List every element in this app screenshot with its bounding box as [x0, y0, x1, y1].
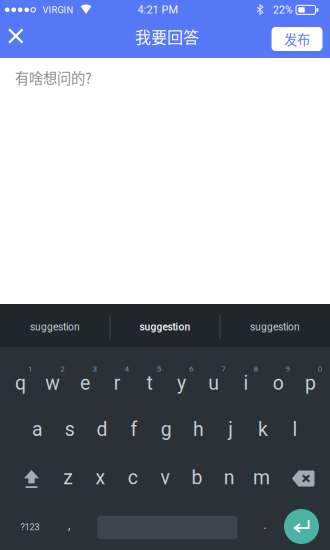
staticText: 2: [60, 364, 64, 373]
staticText: 3: [92, 364, 96, 373]
button[interactable]: i: [230, 362, 262, 404]
staticText: w: [45, 372, 60, 394]
staticText: 我要回答: [135, 25, 199, 48]
button[interactable]: Symbols: [8, 507, 52, 547]
button[interactable]: t: [133, 362, 165, 404]
staticText: b: [192, 466, 203, 489]
button[interactable]: q: [5, 362, 37, 404]
button[interactable]: suggestion: [222, 307, 328, 347]
staticText: s: [65, 418, 75, 441]
staticText: e: [80, 372, 90, 394]
button[interactable]: h: [182, 408, 214, 450]
button[interactable]: u: [198, 362, 230, 404]
staticText: 8: [253, 364, 257, 373]
button[interactable]: n: [213, 457, 245, 499]
button[interactable]: Close: [1, 21, 31, 51]
button[interactable]: w: [37, 362, 69, 404]
staticText: v: [160, 466, 169, 489]
button[interactable]: d: [86, 408, 118, 450]
button[interactable]: k: [247, 408, 279, 450]
staticText: r: [114, 372, 121, 394]
staticText: ?123: [20, 522, 39, 532]
button[interactable]: l: [279, 408, 311, 450]
button[interactable]: suggestion: [112, 307, 218, 347]
button[interactable]: p: [294, 362, 326, 404]
button[interactable]: g: [150, 408, 182, 450]
staticText: 4: [125, 364, 129, 373]
staticText: 7: [221, 364, 225, 373]
staticText: m: [253, 466, 270, 489]
button[interactable]: b: [181, 457, 213, 499]
staticText: o: [273, 372, 284, 394]
staticText: k: [258, 418, 268, 441]
staticText: VIRGIN: [42, 4, 73, 15]
button[interactable]: e: [69, 362, 101, 404]
staticText: 6: [189, 364, 193, 373]
staticText: h: [193, 418, 204, 441]
staticText: f: [131, 418, 138, 441]
button[interactable]: s: [54, 408, 86, 450]
staticText: suggestion: [139, 321, 190, 333]
button[interactable]: o: [262, 362, 294, 404]
button[interactable]: .: [251, 505, 279, 545]
button[interactable]: Return: [284, 509, 319, 544]
staticText: 9: [286, 364, 290, 373]
button[interactable]: f: [118, 408, 150, 450]
button[interactable]: x: [84, 457, 116, 499]
staticText: t: [146, 372, 152, 394]
staticText: a: [32, 418, 43, 441]
button[interactable]: r: [101, 362, 133, 404]
staticText: u: [208, 372, 219, 394]
staticText: d: [96, 418, 107, 441]
staticText: suggestion: [250, 321, 300, 333]
staticText: c: [128, 466, 138, 489]
button[interactable]: z: [52, 457, 84, 499]
staticText: l: [293, 418, 298, 441]
staticText: p: [305, 372, 316, 394]
button[interactable]: a: [21, 408, 53, 450]
button[interactable]: Shift: [16, 462, 48, 496]
button[interactable]: y: [166, 362, 198, 404]
staticText: n: [224, 466, 235, 489]
button[interactable]: suggestion: [2, 307, 108, 347]
button[interactable]: j: [215, 408, 247, 450]
staticText: 发布: [284, 29, 310, 49]
staticText: z: [63, 466, 73, 489]
staticText: y: [177, 372, 186, 394]
staticText: 0: [318, 364, 322, 373]
staticText: suggestion: [30, 321, 80, 333]
staticText: q: [15, 372, 26, 394]
staticText: ,: [68, 518, 70, 532]
button[interactable]: ,: [55, 505, 83, 545]
button[interactable]: 发布: [271, 27, 322, 51]
staticText: 22%: [273, 4, 293, 16]
staticText: j: [228, 418, 233, 441]
button[interactable]: m: [245, 457, 277, 499]
button[interactable]: Delete: [283, 462, 322, 494]
staticText: 1: [28, 364, 32, 373]
button[interactable]: v: [149, 457, 181, 499]
staticText: 4:21 PM: [137, 3, 178, 16]
staticText: i: [243, 372, 248, 394]
staticText: .: [263, 518, 266, 532]
button[interactable]: c: [117, 457, 149, 499]
staticText: x: [95, 466, 105, 489]
staticText: g: [161, 418, 172, 441]
staticText: 有啥想问的?: [15, 67, 92, 88]
staticText: 5: [157, 364, 161, 373]
